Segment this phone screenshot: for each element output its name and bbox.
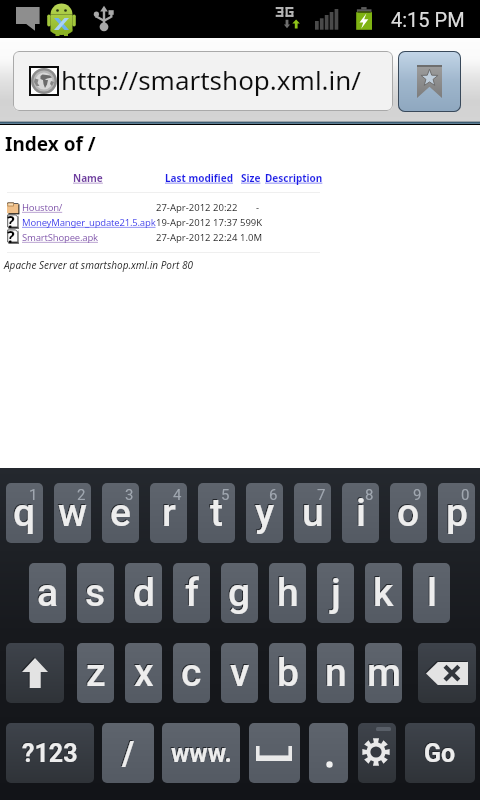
button[interactable]: t xyxy=(198,483,235,543)
staticText: 3 xyxy=(125,486,134,504)
staticText: Name xyxy=(73,171,103,185)
button[interactable]: http://smartshop.xml.in/ xyxy=(13,51,393,111)
staticText: Index of / xyxy=(5,131,96,157)
staticText: q xyxy=(12,489,35,535)
button[interactable]: n xyxy=(317,643,354,703)
button[interactable]: w xyxy=(54,483,91,543)
button[interactable]: Size xyxy=(241,171,261,185)
staticText: 27-Apr-2012 20:22 xyxy=(156,201,238,214)
button[interactable]: MoneyManger_update21.5.apk xyxy=(22,216,156,229)
button[interactable]: x xyxy=(125,643,162,703)
staticText: m xyxy=(367,650,401,696)
staticText: www. xyxy=(170,738,231,767)
staticText: k xyxy=(372,569,393,615)
button[interactable]: g xyxy=(221,563,258,623)
staticText: 8 xyxy=(365,486,374,504)
staticText: 0 xyxy=(461,486,470,504)
staticText: v xyxy=(229,649,249,695)
staticText: y xyxy=(255,490,275,536)
button[interactable]: p xyxy=(438,483,475,543)
staticText: 1 xyxy=(29,486,38,504)
staticText: MoneyManger_update21.5.apk xyxy=(22,216,156,229)
staticText: c xyxy=(180,649,201,695)
staticText: w xyxy=(58,490,87,536)
button[interactable]: a xyxy=(29,563,66,623)
staticText: d xyxy=(132,569,154,615)
staticText: u xyxy=(301,489,323,535)
staticText: 4 xyxy=(173,486,182,504)
button[interactable]: i xyxy=(342,483,379,543)
staticText: www. xyxy=(171,739,232,768)
staticText: Houston/ xyxy=(22,201,63,214)
staticText: 2 xyxy=(77,486,86,504)
staticText: v xyxy=(230,650,250,696)
button[interactable]: Bookmarks xyxy=(398,51,461,112)
button[interactable]: / xyxy=(102,723,154,783)
button[interactable]: h xyxy=(269,563,306,623)
button[interactable]: Go xyxy=(405,723,475,783)
staticText: Last modified xyxy=(165,171,233,185)
staticText: k xyxy=(373,570,394,616)
staticText: r xyxy=(162,490,176,536)
button[interactable]: j xyxy=(317,563,354,623)
button[interactable]: Period xyxy=(309,723,348,783)
button[interactable]: u xyxy=(294,483,331,543)
button[interactable]: y xyxy=(246,483,283,543)
button[interactable]: v xyxy=(221,643,258,703)
button[interactable]: Keyboard settings xyxy=(358,723,396,783)
staticText: 27-Apr-2012 22:24 xyxy=(156,231,238,244)
button[interactable]: SmartShopee.apk xyxy=(22,231,98,244)
staticText: o xyxy=(397,490,420,536)
button[interactable]: c xyxy=(173,643,210,703)
button[interactable]: k xyxy=(365,563,402,623)
button[interactable]: m xyxy=(365,643,402,703)
staticText: h xyxy=(277,570,299,616)
staticText: h xyxy=(276,569,298,615)
staticText: w xyxy=(57,489,86,535)
staticText: ?123 xyxy=(22,739,78,768)
button[interactable]: Name xyxy=(73,171,103,185)
button[interactable]: z xyxy=(77,643,114,703)
button[interactable]: r xyxy=(150,483,187,543)
button[interactable]: b xyxy=(269,643,306,703)
button[interactable]: ?123 xyxy=(6,723,94,783)
staticText: g xyxy=(228,570,251,616)
staticText: d xyxy=(133,570,155,616)
staticText: s xyxy=(84,569,105,615)
button[interactable]: d xyxy=(125,563,162,623)
staticText: ? xyxy=(7,226,15,248)
staticText: x xyxy=(133,649,153,695)
button[interactable]: Space xyxy=(249,723,300,783)
button[interactable]: Backspace xyxy=(418,643,476,703)
button[interactable]: l xyxy=(413,563,450,623)
staticText: 1.0M xyxy=(240,231,263,244)
staticText: u xyxy=(302,490,324,536)
button[interactable]: o xyxy=(390,483,427,543)
staticText: s xyxy=(85,570,106,616)
button[interactable]: Last modified xyxy=(165,171,233,185)
staticText: Apache Server at smartshop.xml.in Port 8… xyxy=(4,258,193,272)
button[interactable]: f xyxy=(173,563,210,623)
staticText: n xyxy=(325,650,347,696)
button[interactable]: Shift xyxy=(6,643,64,703)
staticText: 9 xyxy=(413,486,422,504)
button[interactable]: q xyxy=(6,483,43,543)
staticText: p xyxy=(446,490,468,536)
staticText: t xyxy=(209,489,222,535)
staticText: z xyxy=(86,650,106,696)
staticText: z xyxy=(85,649,105,695)
staticText: f xyxy=(184,569,198,615)
button[interactable]: www. xyxy=(162,723,240,783)
staticText: l xyxy=(427,570,437,616)
button[interactable]: s xyxy=(77,563,114,623)
staticText: / xyxy=(122,734,135,773)
staticText: m xyxy=(366,649,400,695)
button[interactable]: e xyxy=(102,483,139,543)
staticText: x xyxy=(134,650,154,696)
button[interactable]: Houston/ xyxy=(22,201,63,214)
staticText: 599K xyxy=(240,216,263,229)
button[interactable]: Description xyxy=(265,171,323,185)
staticText: - xyxy=(256,201,260,214)
staticText: t xyxy=(210,490,223,536)
staticText: Go xyxy=(424,739,456,768)
